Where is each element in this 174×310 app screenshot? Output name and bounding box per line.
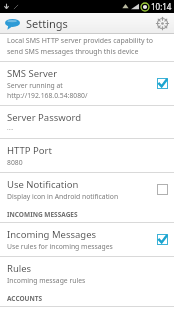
staticText: Incoming message rules — [7, 276, 86, 285]
staticText: Rules — [7, 262, 32, 275]
staticText: SMS Server — [7, 67, 58, 80]
staticText: Local SMS HTTP server provides capabilit… — [7, 36, 154, 46]
button[interactable]: Server Password — [0, 106, 174, 138]
staticText: Use Notification — [7, 178, 79, 191]
button[interactable]: Rules — [0, 257, 174, 290]
staticText: 10:14 — [151, 1, 172, 12]
button[interactable]: SMS Server — [0, 62, 174, 105]
staticText: HTTP Port — [7, 144, 52, 157]
staticText: Server Password — [7, 111, 82, 124]
staticText: INCOMING MESSAGES — [7, 210, 78, 219]
staticText: http://192.168.0.54:8080/ — [7, 91, 88, 100]
button[interactable]: Checked — [157, 234, 168, 245]
staticText: Settings — [26, 16, 68, 31]
button[interactable]: Checked — [157, 78, 168, 89]
button[interactable]: Incoming Messages — [0, 223, 174, 256]
button[interactable]: HTTP Port — [0, 139, 174, 172]
staticText: Server running at — [7, 81, 63, 90]
staticText: 8080 — [7, 158, 23, 167]
button[interactable]: Unchecked — [157, 184, 168, 195]
staticText: Incoming Messages — [7, 228, 97, 241]
staticText: Display icon in Android notification — [7, 192, 119, 201]
staticText: ACCOUNTS — [7, 294, 43, 303]
staticText: send SMS messages through this device — [7, 47, 139, 57]
staticText: Use rules for incoming messages — [7, 242, 113, 251]
button[interactable]: Use Notification — [0, 173, 174, 206]
staticText: ···· — [7, 125, 14, 133]
button[interactable]: Settings options — [153, 13, 171, 34]
